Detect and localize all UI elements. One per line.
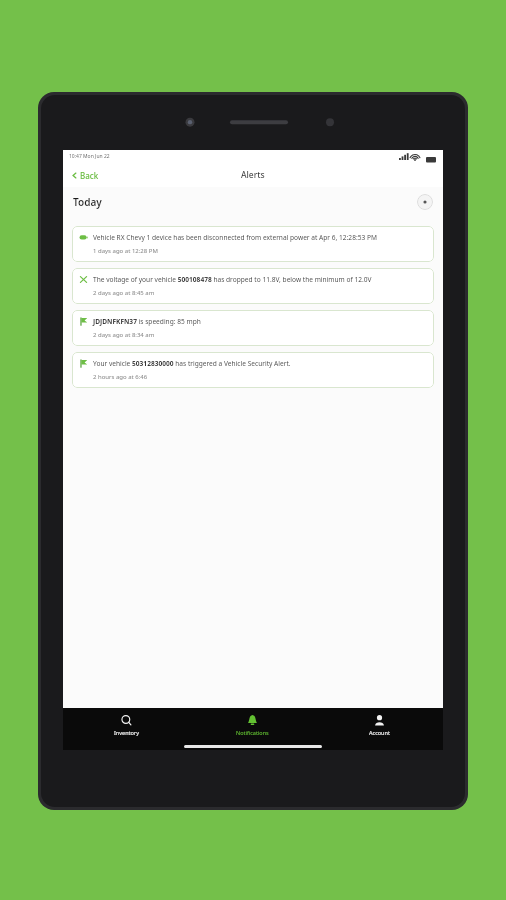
staticText: 10:47 Mon Jun 22 [69,153,110,160]
staticText: Alerts [241,169,265,181]
button[interactable]: Filter alerts [417,194,433,210]
button[interactable]: Inventory [63,708,189,742]
staticText: 2 hours ago at 6:46 [93,373,148,381]
staticText: Back [80,170,99,181]
button[interactable]: Back [69,168,101,183]
button[interactable]: The voltage of your vehicle 500108478 ha… [72,268,434,304]
staticText: Account [369,729,390,736]
staticText: 2 days ago at 8:45 am [93,289,155,297]
button[interactable]: Account [316,708,443,742]
staticText: JDJDNFKFN37 is speeding: 85 mph [93,317,201,326]
button[interactable]: Notifications [189,708,316,742]
staticText: 1 days ago at 12:28 PM [93,247,158,255]
button[interactable]: JDJDNFKFN37 is speeding: 85 mph [72,310,434,346]
staticText: Vehicle RX Chevy 1 device has been disco… [93,233,377,242]
staticText: The voltage of your vehicle 500108478 ha… [93,275,372,284]
staticText: Your vehicle 50312830000 has triggered a… [93,359,291,368]
button[interactable]: Vehicle RX Chevy 1 device has been disco… [72,226,434,262]
button[interactable]: Your vehicle 50312830000 has triggered a… [72,352,434,388]
staticText: Inventory [114,729,139,736]
staticText: 2 days ago at 8:34 am [93,331,155,339]
staticText: Today [73,195,102,209]
staticText: Notifications [236,729,269,736]
